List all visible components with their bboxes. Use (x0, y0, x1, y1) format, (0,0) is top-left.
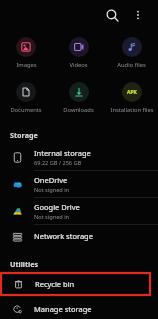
staticText: Manage storage (34, 304, 92, 314)
button[interactable]: Google Drive (0, 198, 158, 224)
staticText: Utilities (10, 259, 39, 269)
button[interactable]: Documents (0, 79, 52, 116)
staticText: Recycle bin (35, 279, 75, 289)
staticText: Storage (10, 130, 38, 140)
button[interactable]: Audio files (105, 34, 158, 71)
button[interactable]: OneDrive (0, 171, 158, 197)
staticText: Downloads (63, 106, 94, 114)
staticText: Installation files (110, 106, 154, 114)
button[interactable]: Recycle bin (1, 273, 150, 295)
button[interactable]: Images (0, 34, 52, 71)
staticText: APK (127, 89, 137, 96)
staticText: Not signed in (34, 213, 70, 221)
button[interactable]: Downloads (52, 79, 105, 116)
button[interactable]: Network storage (0, 225, 158, 247)
staticText: Images (16, 61, 37, 69)
staticText: Internal storage (34, 148, 91, 158)
button[interactable]: Search (100, 3, 124, 27)
staticText: Documents (10, 106, 42, 114)
button[interactable]: More options (126, 3, 150, 27)
button[interactable]: Internal storage (0, 144, 158, 170)
button[interactable]: APK (105, 79, 158, 116)
staticText: OneDrive (34, 175, 68, 185)
staticText: Audio files (117, 61, 146, 69)
button[interactable]: Manage storage (0, 299, 158, 319)
staticText: Videos (69, 61, 88, 69)
staticText: Not signed in (34, 186, 70, 194)
staticText: Network storage (34, 231, 93, 241)
staticText: Google Drive (34, 202, 80, 212)
button[interactable]: Videos (52, 34, 105, 71)
staticText: 69.22 GB / 256 GB (34, 159, 82, 167)
